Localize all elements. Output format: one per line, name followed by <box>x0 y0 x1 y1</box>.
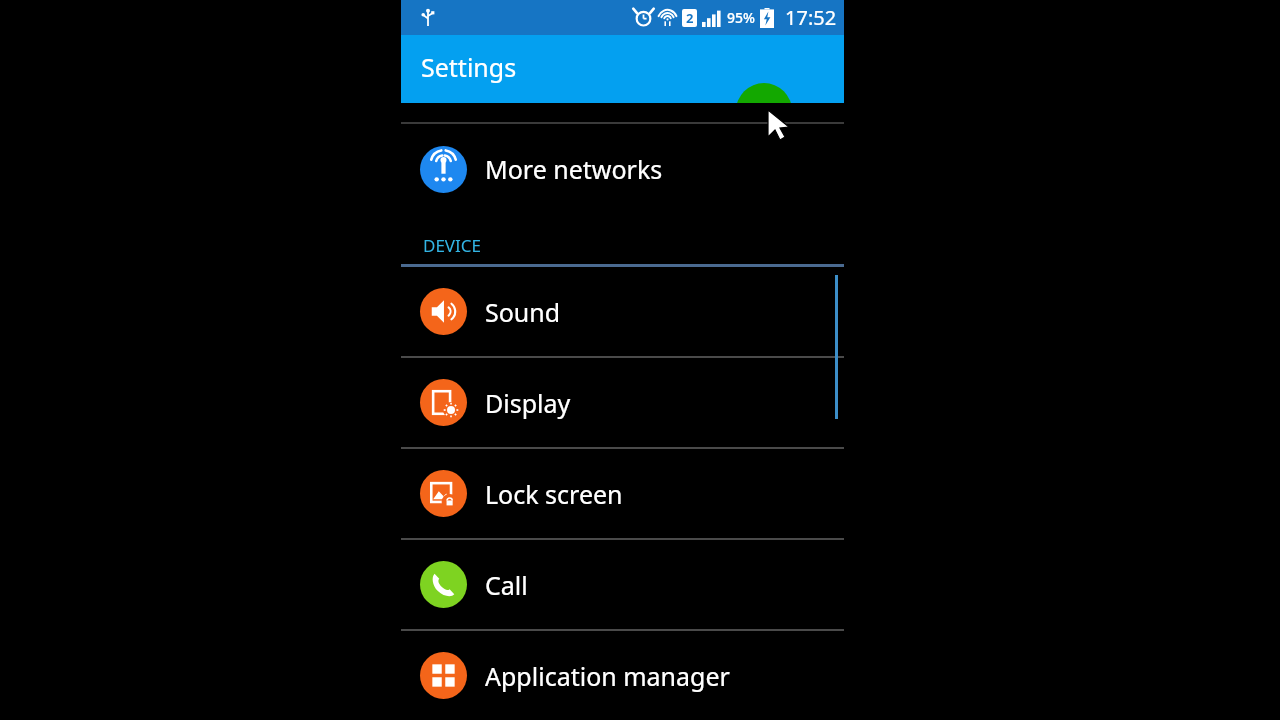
staticText: More networks <box>485 152 663 186</box>
button[interactable]: Call <box>401 540 844 629</box>
staticText: DEVICE <box>423 234 482 257</box>
staticText: Display <box>485 386 571 420</box>
staticText: 17:52 <box>785 4 837 31</box>
staticText: Lock screen <box>485 477 623 511</box>
staticText: 95% <box>727 8 755 27</box>
button[interactable]: Application manager <box>401 631 844 720</box>
staticText: Call <box>485 568 528 602</box>
button[interactable]: Display <box>401 358 844 447</box>
staticText: Sound <box>485 295 561 329</box>
staticText: Settings <box>421 50 517 84</box>
staticText: Application manager <box>485 659 730 693</box>
button[interactable]: Lock screen <box>401 449 844 538</box>
staticText: 2 <box>686 9 694 27</box>
button[interactable]: More networks <box>401 124 844 214</box>
button[interactable]: Sound <box>401 267 844 356</box>
